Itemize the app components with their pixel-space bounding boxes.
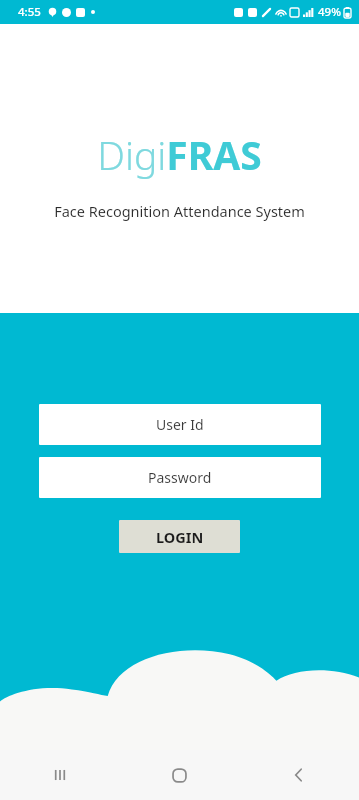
staticText: LOGIN — [156, 527, 204, 547]
staticText: Password — [148, 468, 212, 487]
button[interactable]: Password — [39, 457, 321, 498]
button[interactable]: User Id — [39, 404, 321, 445]
staticText: Face Recognition Attendance System — [54, 201, 305, 221]
staticText: 4:55 — [18, 4, 41, 20]
button[interactable]: Back — [239, 750, 359, 800]
staticText: DigiFRAS — [97, 128, 262, 181]
staticText: 49% — [318, 4, 341, 20]
staticText: User Id — [156, 415, 204, 434]
button[interactable]: Recent apps — [0, 750, 119, 800]
button[interactable]: Home — [119, 750, 239, 800]
button[interactable]: LOGIN — [119, 520, 240, 553]
